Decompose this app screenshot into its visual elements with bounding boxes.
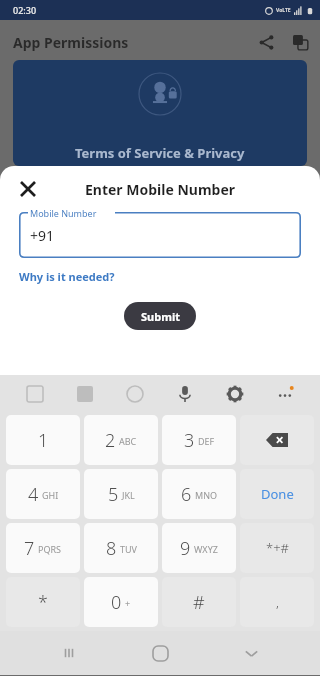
staticText: Done	[261, 485, 294, 503]
button[interactable]: Share	[254, 30, 278, 54]
staticText: Enter Mobile Number	[85, 180, 236, 199]
staticText: TUV	[120, 543, 137, 555]
staticText: 5	[108, 482, 119, 507]
staticText: App Permissions	[13, 33, 129, 52]
button[interactable]: Home	[138, 631, 182, 675]
staticText: 0	[111, 590, 122, 615]
staticText: VoLTE	[276, 7, 291, 14]
button[interactable]: Close	[12, 173, 44, 205]
staticText: GHI	[42, 489, 59, 501]
staticText: 8	[106, 536, 117, 561]
staticText: 02:30	[13, 4, 37, 16]
staticText: *	[38, 590, 48, 615]
button[interactable]: Hide keyboard	[229, 631, 273, 675]
staticText: +	[125, 597, 131, 609]
staticText: Mobile Number	[30, 207, 97, 219]
button[interactable]: 1	[6, 415, 80, 465]
staticText: 4	[28, 482, 39, 507]
button[interactable]: Sticker	[10, 375, 60, 413]
button[interactable]: More options	[260, 375, 310, 413]
button[interactable]: Translate	[288, 30, 312, 54]
staticText: DEF	[198, 435, 215, 447]
staticText: #	[193, 590, 205, 615]
staticText: 3	[184, 428, 195, 453]
button[interactable]: Emoji	[110, 375, 160, 413]
staticText: 9	[180, 536, 191, 561]
staticText: 6	[181, 482, 192, 507]
staticText: WXYZ	[194, 543, 218, 555]
button[interactable]: *	[6, 577, 80, 627]
staticText: Submit	[141, 309, 180, 324]
staticText: Terms of Service & Privacy	[75, 144, 245, 162]
button[interactable]: GIF	[60, 375, 110, 413]
button[interactable]: Why is it needed?	[19, 269, 115, 284]
staticText: 7	[24, 536, 35, 561]
button[interactable]: Recents	[47, 631, 91, 675]
button[interactable]: Voice input	[160, 375, 210, 413]
button[interactable]: 0	[84, 577, 158, 627]
button[interactable]: 5	[84, 469, 158, 519]
button[interactable]: Done	[240, 469, 314, 519]
button[interactable]: 6	[162, 469, 236, 519]
button[interactable]: Backspace	[240, 415, 314, 465]
button[interactable]: 3	[162, 415, 236, 465]
staticText: 1	[38, 428, 49, 453]
button[interactable]: 9	[162, 523, 236, 573]
button[interactable]: 4	[6, 469, 80, 519]
button[interactable]: 7	[6, 523, 80, 573]
staticText: JKL	[122, 489, 135, 501]
staticText: 2	[105, 428, 116, 453]
staticText: PQRS	[38, 543, 62, 555]
staticText: MNO	[195, 489, 218, 501]
button[interactable]: 8	[84, 523, 158, 573]
button[interactable]: #	[162, 577, 236, 627]
button[interactable]: *+#	[240, 523, 314, 573]
staticText: ABC	[119, 435, 137, 447]
staticText: +91	[30, 226, 55, 245]
button[interactable]: Settings	[210, 375, 260, 413]
button[interactable]: Submit	[124, 302, 196, 330]
staticText: *+#	[266, 539, 289, 557]
staticText: ,	[276, 593, 279, 611]
button[interactable]: 2	[84, 415, 158, 465]
